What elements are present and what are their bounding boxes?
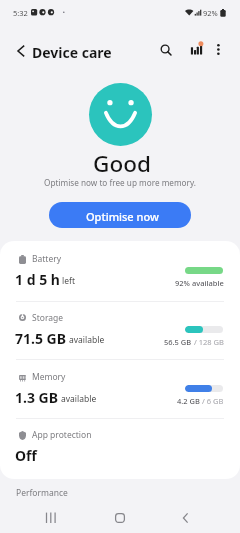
staticText: Performance — [16, 487, 68, 499]
staticText: 1.3 GB — [15, 388, 59, 407]
staticText: Battery — [32, 253, 62, 265]
button[interactable]: App protection — [0, 418, 240, 477]
staticText: 71.5 GB — [15, 329, 67, 348]
button[interactable]: Memory — [0, 360, 240, 419]
staticText: Good — [2, 148, 240, 179]
staticText: Optimise now — [86, 209, 159, 224]
staticText: left — [62, 275, 75, 287]
staticText: Device care — [32, 43, 112, 62]
staticText: available — [61, 393, 97, 405]
button[interactable]: Optimise now — [49, 202, 191, 228]
staticText: / 128 GB — [192, 337, 224, 347]
button[interactable]: More options — [204, 36, 232, 64]
button[interactable]: Statistics — [182, 36, 210, 64]
staticText: Optimise now to free up more memory. — [0, 177, 240, 188]
staticText: Storage — [32, 312, 64, 324]
staticText: 92% available — [175, 278, 224, 288]
staticText: 4.2 GB — [177, 396, 200, 406]
button[interactable]: Battery — [0, 242, 240, 301]
staticText: available — [69, 334, 105, 346]
staticText: Memory — [32, 371, 66, 383]
button[interactable]: Home — [105, 503, 134, 532]
staticText: Off — [15, 446, 37, 465]
staticText: App protection — [32, 429, 92, 441]
button[interactable]: Storage — [0, 301, 240, 360]
staticText: 1 d 5 h — [15, 270, 60, 289]
button[interactable]: Recent apps — [36, 503, 65, 532]
button[interactable]: Navigate up — [7, 37, 35, 65]
staticText: 92% — [203, 8, 218, 18]
staticText: 5:32 — [13, 8, 28, 18]
button[interactable]: Back — [171, 503, 200, 532]
staticText: / 6 GB — [200, 396, 224, 406]
button[interactable]: Search — [152, 36, 180, 64]
staticText: 56.5 GB — [164, 337, 192, 347]
